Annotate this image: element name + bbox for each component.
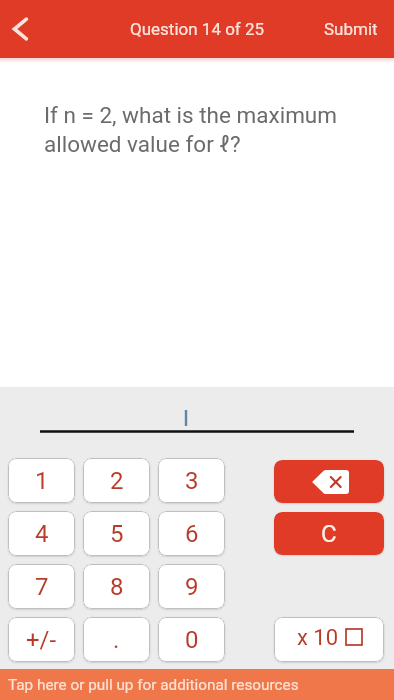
button[interactable]: 0	[158, 617, 225, 662]
staticText: 1	[35, 467, 49, 495]
button[interactable]: x 10	[274, 617, 384, 662]
button[interactable]: 9	[158, 564, 225, 609]
staticText: 4	[35, 520, 49, 548]
staticText: 6	[185, 520, 199, 548]
staticText: Question 14 of 25	[130, 19, 265, 39]
button[interactable]: 2	[83, 458, 150, 503]
staticText: Submit	[324, 19, 378, 39]
staticText: 3	[185, 467, 199, 495]
button[interactable]: 1	[8, 458, 75, 503]
staticText: x 10	[297, 625, 339, 651]
staticText: C	[321, 520, 337, 548]
button[interactable]: 7	[8, 564, 75, 609]
button[interactable]: 8	[83, 564, 150, 609]
staticText: 0	[185, 626, 199, 654]
button[interactable]: 5	[83, 511, 150, 556]
button[interactable]: Submit	[308, 7, 394, 51]
staticText: 9	[185, 573, 199, 601]
button[interactable]: 4	[8, 511, 75, 556]
staticText: 7	[35, 573, 49, 601]
button[interactable]: Tap here or pull up for additional resou…	[0, 669, 394, 700]
staticText: Tap here or pull up for additional resou…	[8, 676, 299, 694]
staticText: +/-	[26, 626, 57, 654]
button[interactable]: 6	[158, 511, 225, 556]
button[interactable]: +/-	[8, 617, 75, 662]
staticText: .	[113, 626, 120, 654]
staticText: If n = 2, what is the maximum allowed va…	[44, 102, 364, 157]
staticText: 5	[110, 520, 124, 548]
button[interactable]: Backspace	[274, 460, 384, 503]
button[interactable]: 3	[158, 458, 225, 503]
staticText: 8	[110, 573, 124, 601]
button[interactable]: Back	[1, 6, 47, 52]
button[interactable]: C	[274, 512, 384, 555]
button[interactable]: .	[83, 617, 150, 662]
staticText: 2	[110, 467, 124, 495]
